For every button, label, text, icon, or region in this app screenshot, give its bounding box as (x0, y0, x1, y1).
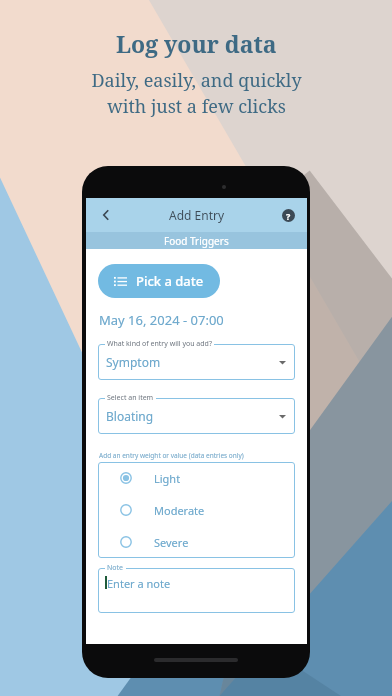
button[interactable]: Enter a note (98, 568, 295, 613)
staticText: Food Triggers (164, 234, 229, 248)
staticText: Enter a note (107, 576, 171, 591)
staticText: Add an entry weight or value (data entri… (99, 451, 244, 460)
staticText: Log your data (116, 28, 277, 59)
button[interactable]: Help (276, 203, 300, 227)
staticText: Note (107, 563, 124, 573)
staticText: Bloating (106, 408, 154, 424)
staticText: Severe (154, 535, 189, 550)
button[interactable]: Symptom (98, 344, 295, 380)
staticText: Light (154, 471, 181, 486)
button[interactable]: Light (98, 462, 295, 494)
button[interactable]: Moderate (98, 494, 295, 526)
button[interactable]: Pick a date (98, 264, 220, 298)
staticText: Moderate (154, 503, 205, 518)
staticText: Add Entry (169, 207, 225, 223)
staticText: May 16, 2024 - 07:00 (99, 311, 224, 329)
staticText: Select an item (107, 393, 154, 403)
button[interactable]: Severe (98, 526, 295, 558)
button[interactable]: Bloating (98, 398, 295, 434)
staticText: Daily, easily, and quickly with just a f… (91, 68, 302, 119)
staticText: ? (286, 210, 291, 222)
staticText: What kind of entry will you add? (107, 339, 212, 349)
staticText: Symptom (106, 354, 161, 370)
staticText: Pick a date (136, 272, 204, 290)
button[interactable]: Back (92, 201, 120, 229)
